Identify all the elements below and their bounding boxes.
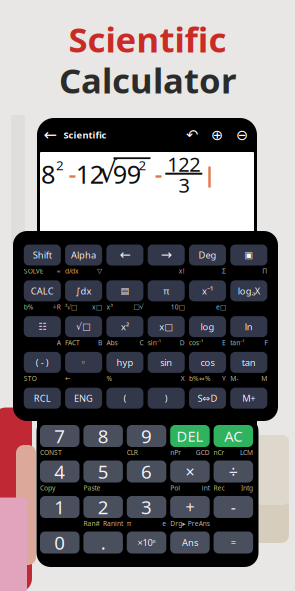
button[interactable]: RCL	[24, 388, 61, 409]
button[interactable]: Deg	[189, 244, 226, 265]
button[interactable]: ▣	[230, 244, 267, 265]
staticText: FACT	[65, 338, 80, 347]
button[interactable]: Ans	[170, 531, 210, 553]
staticText: Abs	[106, 338, 117, 347]
staticText: 99	[113, 157, 141, 191]
staticText: E	[222, 338, 226, 347]
staticText: ←	[43, 126, 56, 144]
staticText: √	[98, 155, 117, 189]
staticText: CALC	[31, 285, 54, 297]
staticText: Scientific	[68, 16, 226, 62]
button[interactable]: logₐX	[230, 280, 267, 301]
staticText: ×10ˣ	[138, 536, 156, 549]
button[interactable]: 1	[40, 496, 79, 518]
button[interactable]: ENG	[65, 388, 102, 409]
staticText: .	[101, 530, 106, 555]
button[interactable]: ×10ˣ	[127, 531, 166, 553]
button[interactable]: 3	[127, 496, 166, 518]
button[interactable]: +	[170, 496, 210, 518]
staticText: b%⇔%	[189, 374, 211, 383]
button[interactable]: ( - )	[24, 352, 61, 373]
button[interactable]: .	[83, 531, 123, 553]
button[interactable]: ◦	[65, 352, 102, 373]
button[interactable]: x²	[106, 316, 143, 337]
staticText: CLR	[127, 448, 138, 457]
button[interactable]: =	[214, 531, 253, 553]
button[interactable]: ln	[230, 316, 267, 337]
staticText: π	[127, 519, 131, 528]
button[interactable]: ÷	[214, 460, 253, 482]
staticText: 2	[138, 156, 146, 174]
staticText: ln	[245, 320, 253, 333]
staticText: Copy	[40, 484, 55, 492]
staticText: AC	[224, 426, 242, 446]
staticText: ⊕	[211, 127, 223, 143]
staticText: hyp	[116, 356, 133, 369]
staticText: 3	[178, 172, 189, 198]
button[interactable]: Alpha	[65, 244, 102, 265]
staticText: =	[231, 536, 236, 549]
button[interactable]: Zoom in	[210, 128, 224, 142]
staticText: 2	[56, 156, 64, 174]
button[interactable]: ×	[170, 460, 210, 482]
button[interactable]: x⁻¹	[189, 280, 226, 301]
button[interactable]: cos	[189, 352, 226, 373]
staticText: LCM	[240, 448, 253, 457]
button[interactable]: Undo	[185, 128, 199, 142]
button[interactable]: S⇔D	[189, 388, 226, 409]
staticText: tan⁻¹	[230, 338, 244, 347]
staticText: 3	[141, 495, 152, 519]
staticText: A	[57, 338, 61, 347]
button[interactable]: tan	[230, 352, 267, 373]
button[interactable]: CALC	[24, 280, 61, 301]
button[interactable]: 0	[40, 531, 79, 553]
button[interactable]: sin	[148, 352, 185, 373]
button[interactable]: AC	[214, 425, 253, 447]
button[interactable]: x□	[148, 316, 185, 337]
button[interactable]: Shift	[24, 244, 61, 265]
staticText: Pol	[170, 484, 180, 492]
staticText: int	[202, 484, 210, 492]
button[interactable]: π	[148, 280, 185, 301]
staticText: □√	[133, 303, 143, 311]
button[interactable]: ∫dx	[65, 280, 102, 301]
button[interactable]: M+	[230, 388, 267, 409]
staticText: ☷	[38, 321, 46, 332]
button[interactable]: 4	[40, 460, 79, 482]
staticText: ◦	[81, 357, 87, 368]
button[interactable]: 7	[40, 425, 79, 447]
staticText: )	[165, 392, 168, 404]
button[interactable]: 5	[83, 460, 123, 482]
button[interactable]: (	[106, 388, 143, 409]
button[interactable]: DEL	[170, 425, 210, 447]
staticText: M+	[242, 392, 255, 404]
button[interactable]: 6	[127, 460, 166, 482]
staticText: nCr	[214, 448, 225, 457]
button[interactable]: Zoom out	[235, 128, 249, 142]
staticText: d/dx	[65, 267, 79, 275]
button[interactable]: log	[189, 316, 226, 337]
button[interactable]: 2	[83, 496, 123, 518]
button[interactable]: ☷	[24, 316, 61, 337]
button[interactable]: 8	[83, 425, 123, 447]
staticText: nPr	[170, 448, 181, 457]
button[interactable]: )	[148, 388, 185, 409]
staticText: π	[163, 285, 169, 297]
button[interactable]: Back	[42, 128, 58, 142]
staticText: 5	[98, 459, 109, 484]
staticText: STO	[24, 374, 37, 383]
button[interactable]: √□	[65, 316, 102, 337]
button[interactable]: →	[148, 244, 185, 265]
staticText: =	[57, 267, 61, 275]
button[interactable]: -	[214, 496, 253, 518]
staticText: x!	[179, 267, 185, 275]
button[interactable]: hyp	[106, 352, 143, 373]
staticText: logₐX	[238, 285, 260, 297]
staticText: -	[231, 496, 236, 518]
button[interactable]: ▤	[106, 280, 143, 301]
staticText: Y	[222, 374, 226, 383]
staticText: ×	[185, 461, 194, 482]
button[interactable]: 9	[127, 425, 166, 447]
button[interactable]: ←	[106, 244, 143, 265]
staticText: Ans	[182, 536, 198, 549]
